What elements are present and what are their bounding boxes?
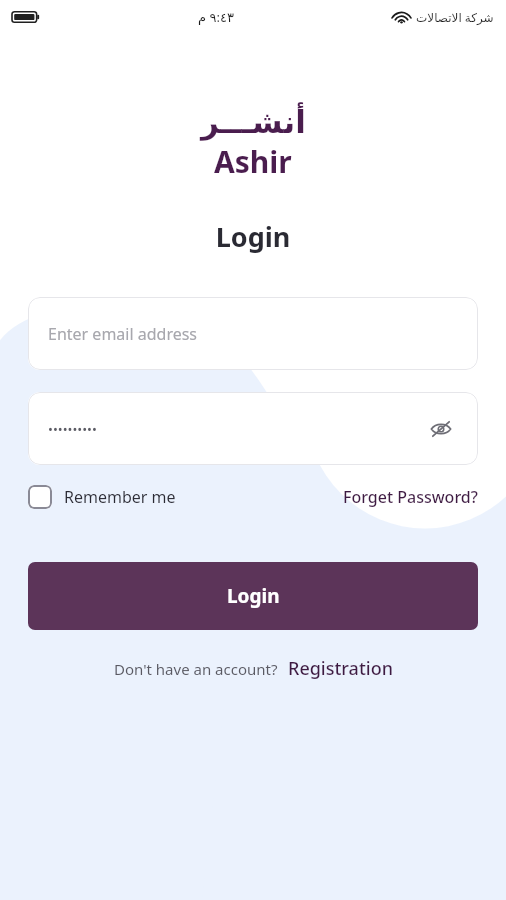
button[interactable]: Remember me [28,485,176,509]
staticText: أنشـــر [201,104,306,140]
staticText: Forget Password? [343,486,478,508]
staticText: شركة الاتصالات [416,9,494,25]
staticText: Enter email address [48,323,198,345]
button[interactable]: •••••••••• [28,392,478,465]
button[interactable]: Enter email address [28,297,478,370]
staticText: Login [227,583,280,609]
button[interactable]: Forget Password? [343,486,478,508]
staticText: •••••••••• [48,420,424,438]
button[interactable]: Login [28,562,478,630]
staticText: Don't have an account? [114,659,278,679]
staticText: Remember me [64,486,176,508]
staticText: ٩:٤٣ م [198,8,234,26]
button[interactable]: Show password [424,412,458,446]
button[interactable]: Registration [288,656,393,681]
staticText: Ashir [214,141,292,182]
staticText: Registration [288,656,393,681]
staticText: Login [0,218,506,255]
